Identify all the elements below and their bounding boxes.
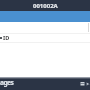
button[interactable]: ID	[0, 34, 90, 42]
button[interactable]	[0, 22, 90, 33]
staticText: ID	[3, 34, 10, 42]
button[interactable]: ages	[0, 78, 14, 87]
button[interactable]: 001002A	[0, 0, 90, 11]
button[interactable]: Cursor	[86, 82, 90, 86]
staticText: 001002A	[33, 2, 58, 10]
button[interactable]: List view	[80, 81, 85, 86]
